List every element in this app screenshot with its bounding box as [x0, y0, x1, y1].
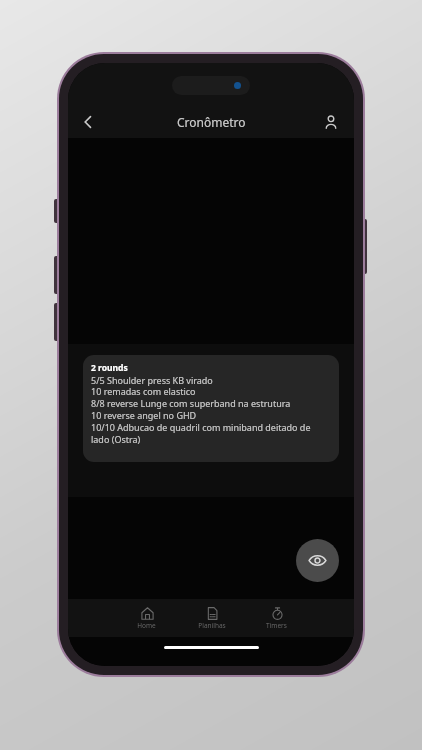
staticText: Planilhas	[198, 621, 226, 630]
button[interactable]: Back	[73, 107, 103, 137]
staticText: 2 rounds	[91, 362, 128, 374]
staticText: Home	[137, 621, 156, 630]
button[interactable]: 2 rounds	[83, 355, 339, 462]
staticText: 5/5 Shoulder press KB virado 10 remadas …	[91, 374, 329, 446]
staticText: Cronômetro	[177, 114, 246, 130]
button[interactable]: Profile	[316, 107, 346, 137]
button[interactable]: Preview	[296, 539, 339, 582]
button[interactable]: Timers	[244, 599, 309, 637]
button[interactable]: Home	[114, 599, 179, 637]
button[interactable]: Planilhas	[179, 599, 244, 637]
staticText: Timers	[266, 621, 287, 630]
